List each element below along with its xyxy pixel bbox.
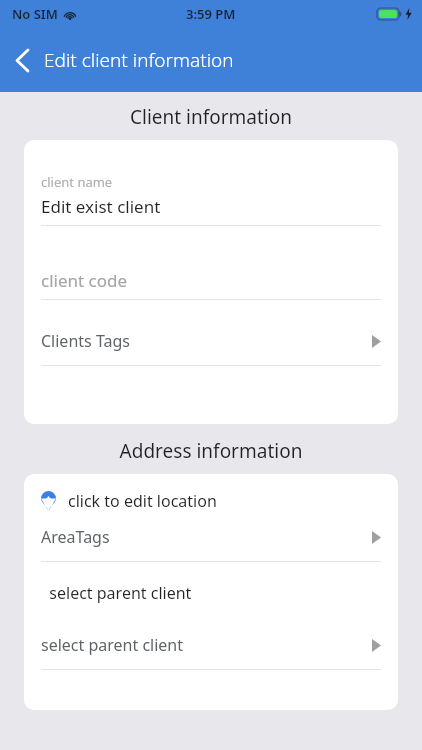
button[interactable]: click to edit location: [24, 490, 398, 526]
staticText: Edit client information: [44, 47, 234, 73]
staticText: client name: [41, 173, 113, 191]
button[interactable]: AreaTags: [24, 526, 398, 561]
staticText: Address information: [0, 438, 422, 464]
staticText: select parent client: [41, 634, 184, 656]
button[interactable]: client name: [24, 173, 398, 225]
staticText: Edit exist client: [41, 195, 161, 218]
staticText: 3:59 PM: [186, 5, 236, 23]
button[interactable]: Clients Tags: [24, 330, 398, 365]
button[interactable]: select parent client: [24, 634, 398, 669]
staticText: Client information: [0, 104, 422, 130]
staticText: No SIM: [12, 5, 58, 23]
staticText: AreaTags: [41, 526, 110, 548]
staticText: click to edit location: [68, 490, 217, 512]
button[interactable]: Back: [0, 38, 44, 82]
staticText: select parent client: [41, 582, 192, 604]
button[interactable]: select parent client: [24, 582, 398, 604]
staticText: client code: [41, 269, 128, 292]
button[interactable]: client code: [24, 269, 398, 299]
staticText: Clients Tags: [41, 330, 130, 352]
